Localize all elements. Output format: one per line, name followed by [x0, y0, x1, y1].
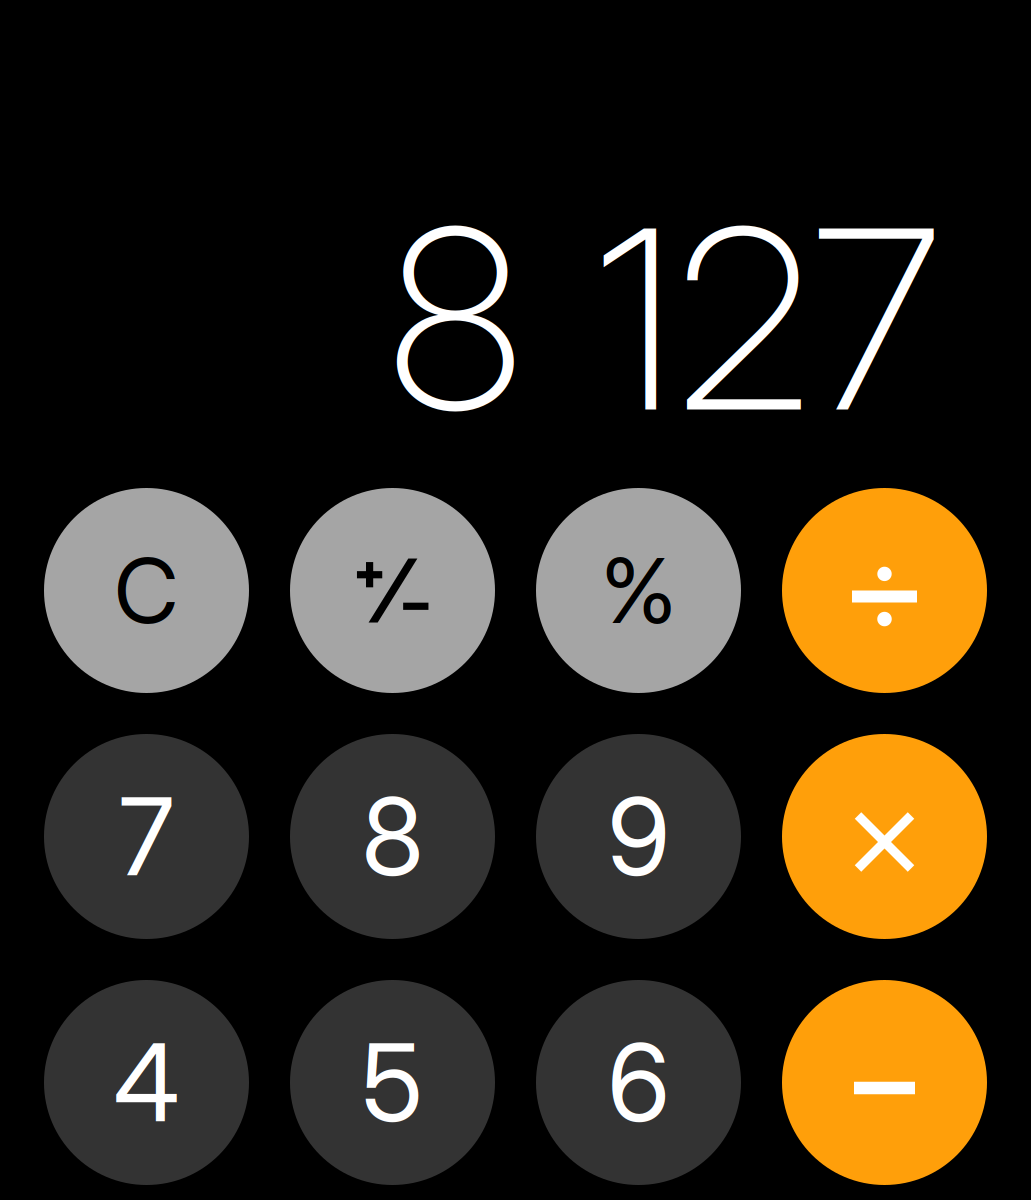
staticText: 5	[361, 1018, 423, 1147]
button[interactable]: Divide	[782, 488, 987, 693]
staticText: 7	[119, 772, 174, 901]
button[interactable]: Multiply	[782, 734, 987, 939]
staticText: 8	[361, 772, 423, 901]
staticText: 6	[607, 1018, 669, 1147]
staticText: 8 127	[388, 168, 941, 470]
button[interactable]: 9	[536, 734, 741, 939]
button[interactable]: 6	[536, 980, 741, 1185]
staticText: %	[601, 536, 676, 645]
button[interactable]: 8	[290, 734, 495, 939]
staticText: 4	[113, 1018, 179, 1147]
staticText: 9	[607, 772, 669, 901]
button[interactable]: 4	[44, 980, 249, 1185]
staticText: C	[114, 536, 179, 645]
button[interactable]: Subtract	[782, 980, 987, 1185]
button[interactable]: Plus minus	[290, 488, 495, 693]
button[interactable]: %	[536, 488, 741, 693]
button[interactable]: C	[44, 488, 249, 693]
button[interactable]: 7	[44, 734, 249, 939]
button[interactable]: 5	[290, 980, 495, 1185]
